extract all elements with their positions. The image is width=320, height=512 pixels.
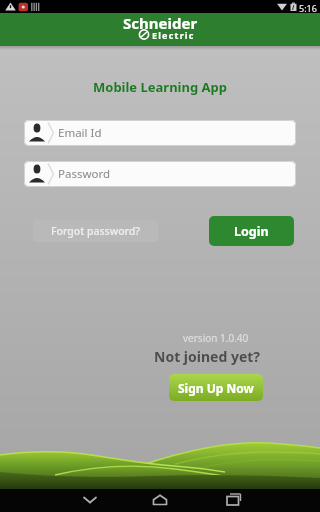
staticText: Login [234,223,269,240]
staticText: 5:16 [299,2,317,14]
staticText: Schneider [123,13,198,33]
button[interactable]: Password [24,161,296,187]
staticText: Mobile Learning App [93,78,227,96]
button[interactable] [75,489,105,512]
button[interactable]: Sign Up Now [169,374,263,401]
button[interactable]: Login [209,216,294,246]
button[interactable] [218,489,248,512]
staticText: Not joined yet? [154,347,261,366]
button[interactable] [145,489,175,512]
staticText: Forgot password? [51,224,141,238]
staticText: version 1.0.40 [183,331,249,345]
button[interactable]: Forgot password? [33,220,158,242]
staticText: Email Id [58,125,102,141]
staticText: Password [58,166,111,182]
staticText: Electric [152,29,195,41]
button[interactable]: Email Id [24,120,296,146]
staticText: Sign Up Now [178,380,254,396]
